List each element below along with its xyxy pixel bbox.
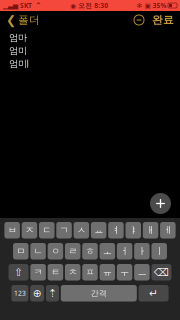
staticText: ❮ <box>6 13 16 27</box>
staticText: ㄴ <box>34 245 43 257</box>
staticText: ㅊ <box>68 266 77 278</box>
staticText: ㅋ <box>34 266 43 278</box>
staticText: ◉ 오전 8:30 <box>70 1 108 10</box>
button[interactable]: ⇧ <box>8 264 28 280</box>
staticText: ㄱ <box>60 224 69 236</box>
staticText: ↵ <box>149 287 158 299</box>
button[interactable]: ㅜ <box>117 264 132 280</box>
button[interactable]: ㄴ <box>30 243 46 259</box>
staticText: ㅠ <box>103 266 112 278</box>
staticText: ⊕ <box>33 287 42 299</box>
staticText: ㅓ <box>120 245 129 257</box>
staticText: ㄷ <box>42 224 51 236</box>
staticText: ㅂ <box>8 224 17 236</box>
staticText: ㅍ <box>85 266 94 278</box>
staticText: ㅗ <box>103 245 112 257</box>
staticText: ㅈ <box>25 224 34 236</box>
button[interactable]: ㅣ <box>151 243 167 259</box>
button[interactable]: ㅏ <box>134 243 150 259</box>
staticText: ⌃ <box>32 1 42 10</box>
button[interactable]: ㅇ <box>48 243 63 259</box>
button[interactable]: ㅈ <box>22 222 37 238</box>
staticText: ㅌ <box>51 266 60 278</box>
staticText: ✻ ▣ 35% <box>136 1 166 10</box>
button[interactable]: ㅛ <box>91 222 106 238</box>
button[interactable]: ㄹ <box>65 243 80 259</box>
staticText: ⌫ <box>154 266 169 278</box>
staticText: ㅜ <box>120 266 129 278</box>
staticText: ㅐ <box>146 224 155 236</box>
staticText: SKT <box>18 1 32 10</box>
button[interactable]: 새 메모 <box>147 190 174 217</box>
button[interactable]: ㅍ <box>82 264 98 280</box>
button[interactable]: ㅌ <box>48 264 63 280</box>
staticText: ㅔ <box>163 224 172 236</box>
button[interactable]: ㅎ <box>82 243 98 259</box>
button[interactable]: ㅕ <box>108 222 124 238</box>
button[interactable]: 간격 <box>61 285 137 301</box>
staticText: 폴더 <box>18 13 40 26</box>
staticText: 엄미 <box>9 58 27 69</box>
button[interactable]: ㄷ <box>39 222 54 238</box>
button[interactable]: ㅡ <box>134 264 150 280</box>
button[interactable]: ㅐ <box>143 222 158 238</box>
button[interactable]: ㅂ <box>4 222 20 238</box>
button[interactable]: ⊕ <box>30 285 44 301</box>
button[interactable]: ㅊ <box>65 264 80 280</box>
button[interactable]: ㅓ <box>117 243 132 259</box>
staticText: ㅡ <box>137 266 146 278</box>
staticText: 완료 <box>152 13 174 26</box>
button[interactable]: ↵ <box>139 285 169 301</box>
staticText: ㅎ <box>85 245 94 257</box>
button[interactable]: ⇡ <box>46 285 59 301</box>
staticText: ㅅ <box>77 224 86 236</box>
button[interactable]: ㅅ <box>74 222 89 238</box>
staticText: ▁▃▅ <box>3 2 18 9</box>
staticText: ㅣ <box>155 245 164 257</box>
button[interactable]: ❮ <box>2 10 44 30</box>
staticText: ⇡ <box>48 287 57 299</box>
staticText: ㅑ <box>129 224 138 236</box>
staticText: 엄미 <box>9 45 27 56</box>
staticText: ⇧ <box>14 266 23 278</box>
staticText: 엄마 <box>9 32 27 43</box>
staticText: ㅕ <box>111 224 120 236</box>
button[interactable]: ㅗ <box>99 243 115 259</box>
staticText: ㅛ <box>94 224 103 236</box>
button[interactable]: ㄱ <box>56 222 72 238</box>
button[interactable]: ㅑ <box>125 222 141 238</box>
button[interactable]: ㅋ <box>30 264 46 280</box>
staticText: 123 <box>14 289 26 298</box>
staticText: ㅏ <box>137 245 146 257</box>
button[interactable]: ㅠ <box>99 264 115 280</box>
staticText: ㄹ <box>68 245 77 257</box>
button[interactable]: ⌫ <box>151 264 171 280</box>
staticText: ㅁ <box>16 245 25 257</box>
button[interactable]: ㅁ <box>13 243 28 259</box>
button[interactable]: 메모 접기 <box>130 12 148 28</box>
button[interactable]: ㅔ <box>160 222 176 238</box>
button[interactable]: 123 <box>11 285 28 301</box>
button[interactable]: 완료 <box>148 10 178 29</box>
staticText: 간격 <box>91 288 107 298</box>
staticText: ㅇ <box>51 245 60 257</box>
